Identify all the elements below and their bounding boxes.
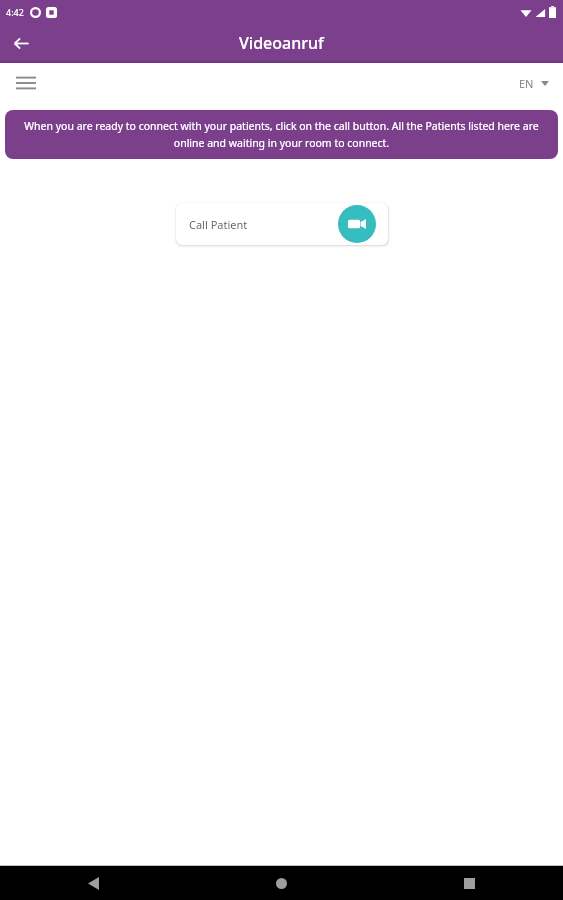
- button[interactable]: Home: [188, 866, 375, 900]
- button[interactable]: EN: [519, 76, 549, 91]
- staticText: When you are ready to connect with your …: [17, 119, 546, 150]
- staticText: Call Patient: [189, 217, 248, 232]
- staticText: 4:42: [6, 6, 24, 18]
- button[interactable]: Call Patient: [176, 203, 388, 245]
- button[interactable]: Open navigation menu: [12, 69, 40, 97]
- staticText: Videoanruf: [239, 32, 324, 54]
- button[interactable]: Back: [8, 30, 34, 56]
- button[interactable]: Recent apps: [376, 866, 563, 900]
- button[interactable]: Back: [0, 866, 187, 900]
- staticText: EN: [519, 76, 534, 91]
- button[interactable]: Start video call: [338, 205, 376, 243]
